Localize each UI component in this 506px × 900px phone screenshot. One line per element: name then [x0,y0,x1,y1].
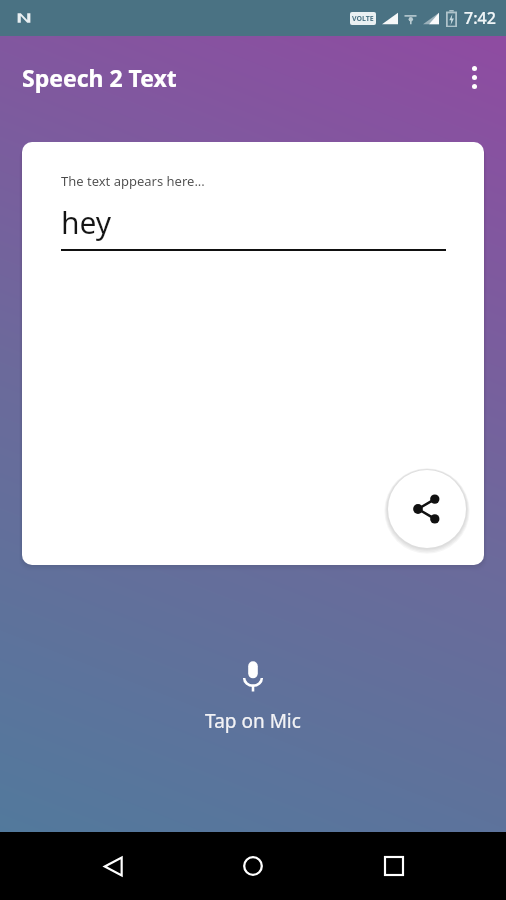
button[interactable]: The text appears here... [22,142,484,565]
button[interactable]: Share [388,470,466,548]
button[interactable]: Microphone [205,660,301,734]
staticText: The text appears here... [61,172,205,190]
button[interactable]: More options [450,53,498,101]
staticText: VOLTE [352,14,374,24]
staticText: Speech 2 Text [22,62,177,93]
other: Microphone [240,660,266,694]
staticText: Tap on Mic [205,708,301,734]
staticText: hey [61,202,112,243]
button[interactable]: Back [85,838,141,894]
staticText: 7:42 [464,7,496,29]
button[interactable]: Home [225,838,281,894]
button[interactable]: Recents [366,838,422,894]
